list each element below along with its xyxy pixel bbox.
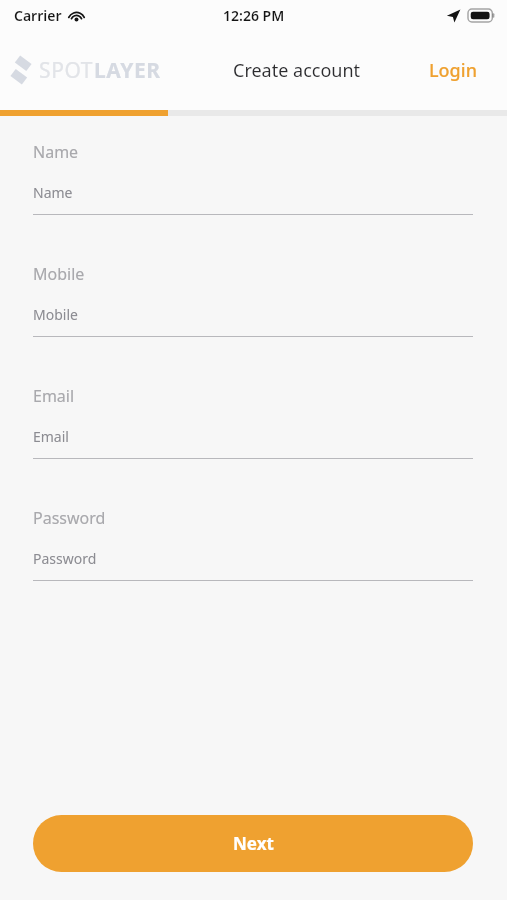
staticText: Mobile — [33, 263, 85, 285]
staticText: Password — [33, 507, 106, 529]
staticText: LAYER — [94, 56, 161, 85]
staticText: Next — [233, 832, 274, 855]
staticText: Email — [33, 427, 69, 446]
button[interactable]: Create account — [233, 58, 361, 83]
button[interactable]: Email — [0, 385, 507, 459]
staticText: Create account — [233, 58, 361, 83]
staticText: Carrier — [14, 6, 62, 25]
button[interactable]: Mobile — [0, 263, 507, 337]
staticText: SPOT — [39, 56, 94, 85]
staticText: Mobile — [33, 305, 78, 324]
staticText: Name — [33, 141, 79, 163]
staticText: Password — [33, 549, 97, 568]
button[interactable]: Name — [0, 141, 507, 215]
staticText: 12:26 PM — [223, 6, 285, 25]
staticText: Name — [33, 183, 73, 202]
button[interactable]: Password — [0, 507, 507, 581]
staticText: Email — [33, 385, 75, 407]
staticText: Login — [429, 58, 477, 83]
button[interactable]: Next — [33, 815, 473, 872]
button[interactable]: SpotLayer home — [10, 55, 161, 85]
button[interactable]: Login — [429, 58, 477, 83]
